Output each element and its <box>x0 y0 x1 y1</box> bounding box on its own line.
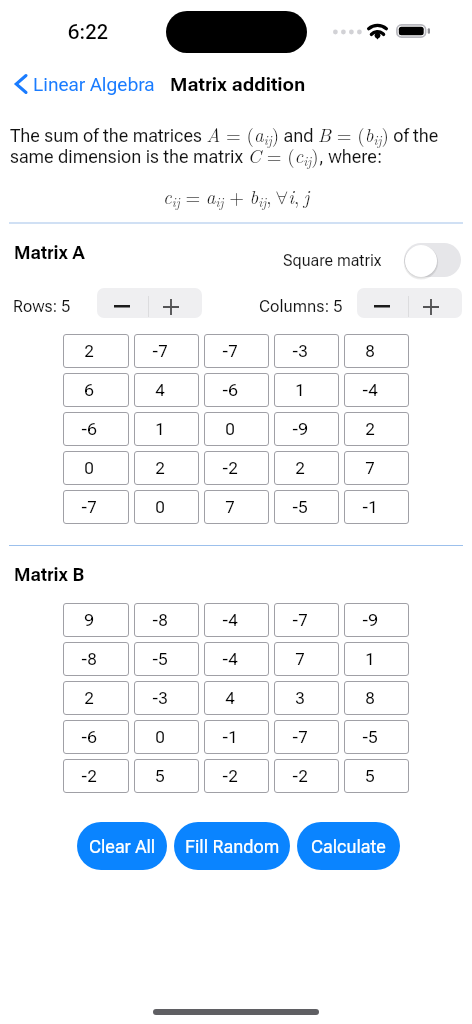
staticText: -7 <box>81 497 97 517</box>
staticText: Matrix A <box>14 242 85 263</box>
button[interactable]: Increase rows <box>150 288 202 318</box>
button[interactable]: 9 <box>63 603 129 637</box>
staticText: 2 <box>84 341 94 361</box>
button[interactable]: Increase columns <box>410 288 462 318</box>
staticText: -2 <box>222 766 238 786</box>
button[interactable]: 7 <box>204 490 269 524</box>
button[interactable]: -2 <box>63 759 129 793</box>
button[interactable]: 5 <box>344 759 409 793</box>
button[interactable]: -1 <box>204 720 269 754</box>
button[interactable]: 2 <box>63 681 129 715</box>
button[interactable]: 0 <box>63 451 129 485</box>
staticText: 5 <box>155 766 165 786</box>
staticText: -3 <box>292 341 308 361</box>
button[interactable]: -2 <box>204 451 269 485</box>
staticText: The sum of the matrices A = (aij) and B … <box>10 121 439 149</box>
staticText: 0 <box>155 497 165 517</box>
button[interactable]: -8 <box>134 603 199 637</box>
button[interactable]: -4 <box>344 373 409 407</box>
button[interactable]: -1 <box>344 490 409 524</box>
button[interactable]: -4 <box>204 603 269 637</box>
staticText: -2 <box>81 766 97 786</box>
staticText: 9 <box>84 610 94 630</box>
staticText: -7 <box>292 727 308 747</box>
button[interactable]: 2 <box>63 334 129 368</box>
button[interactable]: 1 <box>134 412 199 446</box>
button[interactable]: -6 <box>63 720 129 754</box>
button[interactable]: Clear All <box>77 822 167 870</box>
staticText: 2 <box>155 458 165 478</box>
button[interactable]: 2 <box>344 412 409 446</box>
staticText: cij = aij + bij, ∀i, j <box>163 183 310 211</box>
button[interactable]: 6 <box>63 373 129 407</box>
staticText: -7 <box>152 341 168 361</box>
button[interactable]: 3 <box>274 681 339 715</box>
staticText: -4 <box>222 610 238 630</box>
staticText: 7 <box>225 497 235 517</box>
button[interactable]: 5 <box>134 759 199 793</box>
staticText: -4 <box>222 649 238 669</box>
button[interactable]: -3 <box>134 681 199 715</box>
button[interactable]: 4 <box>204 681 269 715</box>
staticText: -4 <box>362 380 378 400</box>
button[interactable]: 4 <box>134 373 199 407</box>
button[interactable]: -5 <box>274 490 339 524</box>
button[interactable]: Decrease columns <box>357 288 409 318</box>
staticText: -1 <box>222 727 238 747</box>
button[interactable]: -6 <box>204 373 269 407</box>
button[interactable]: -4 <box>204 642 269 676</box>
staticText: -7 <box>292 610 308 630</box>
button[interactable]: -2 <box>274 759 339 793</box>
staticText: 0 <box>155 727 165 747</box>
button[interactable]: 0 <box>204 412 269 446</box>
staticText: 8 <box>365 688 375 708</box>
staticText: -2 <box>292 766 308 786</box>
staticText: 0 <box>225 419 235 439</box>
staticText: -7 <box>222 341 238 361</box>
button[interactable]: 8 <box>344 681 409 715</box>
staticText: 4 <box>225 688 235 708</box>
button[interactable]: -9 <box>274 412 339 446</box>
button[interactable]: -3 <box>274 334 339 368</box>
staticText: Fill Random <box>185 836 280 857</box>
button[interactable]: -7 <box>134 334 199 368</box>
button[interactable]: Decrease rows <box>97 288 149 318</box>
staticText: -9 <box>292 419 308 439</box>
staticText: 5 <box>365 766 375 786</box>
staticText: 1 <box>155 419 165 439</box>
button[interactable]: 2 <box>274 451 339 485</box>
button[interactable]: 7 <box>344 451 409 485</box>
staticText: 0 <box>84 458 94 478</box>
staticText: 4 <box>155 380 165 400</box>
staticText: 1 <box>295 380 305 400</box>
staticText: Calculate <box>311 836 386 857</box>
button[interactable]: -7 <box>274 603 339 637</box>
button[interactable]: -5 <box>134 642 199 676</box>
button[interactable]: -9 <box>344 603 409 637</box>
button[interactable]: 0 <box>134 720 199 754</box>
button[interactable]: -2 <box>204 759 269 793</box>
button[interactable]: 8 <box>344 334 409 368</box>
button[interactable]: 7 <box>274 642 339 676</box>
staticText: -8 <box>81 649 97 669</box>
button[interactable]: Square matrix <box>283 243 461 277</box>
button[interactable]: -7 <box>63 490 129 524</box>
button[interactable]: 1 <box>274 373 339 407</box>
staticText: -3 <box>152 688 168 708</box>
button[interactable]: -7 <box>274 720 339 754</box>
staticText: Rows: 5 <box>13 297 71 316</box>
button[interactable]: Linear Algebra <box>8 68 161 100</box>
staticText: -9 <box>362 610 378 630</box>
staticText: -5 <box>152 649 168 669</box>
button[interactable]: -8 <box>63 642 129 676</box>
button[interactable]: -6 <box>63 412 129 446</box>
staticText: 8 <box>365 341 375 361</box>
button[interactable]: Fill Random <box>174 822 290 870</box>
button[interactable]: 0 <box>134 490 199 524</box>
staticText: -8 <box>152 610 168 630</box>
button[interactable]: 2 <box>134 451 199 485</box>
button[interactable]: 1 <box>344 642 409 676</box>
button[interactable]: -5 <box>344 720 409 754</box>
button[interactable]: Calculate <box>297 822 400 870</box>
button[interactable]: -7 <box>204 334 269 368</box>
